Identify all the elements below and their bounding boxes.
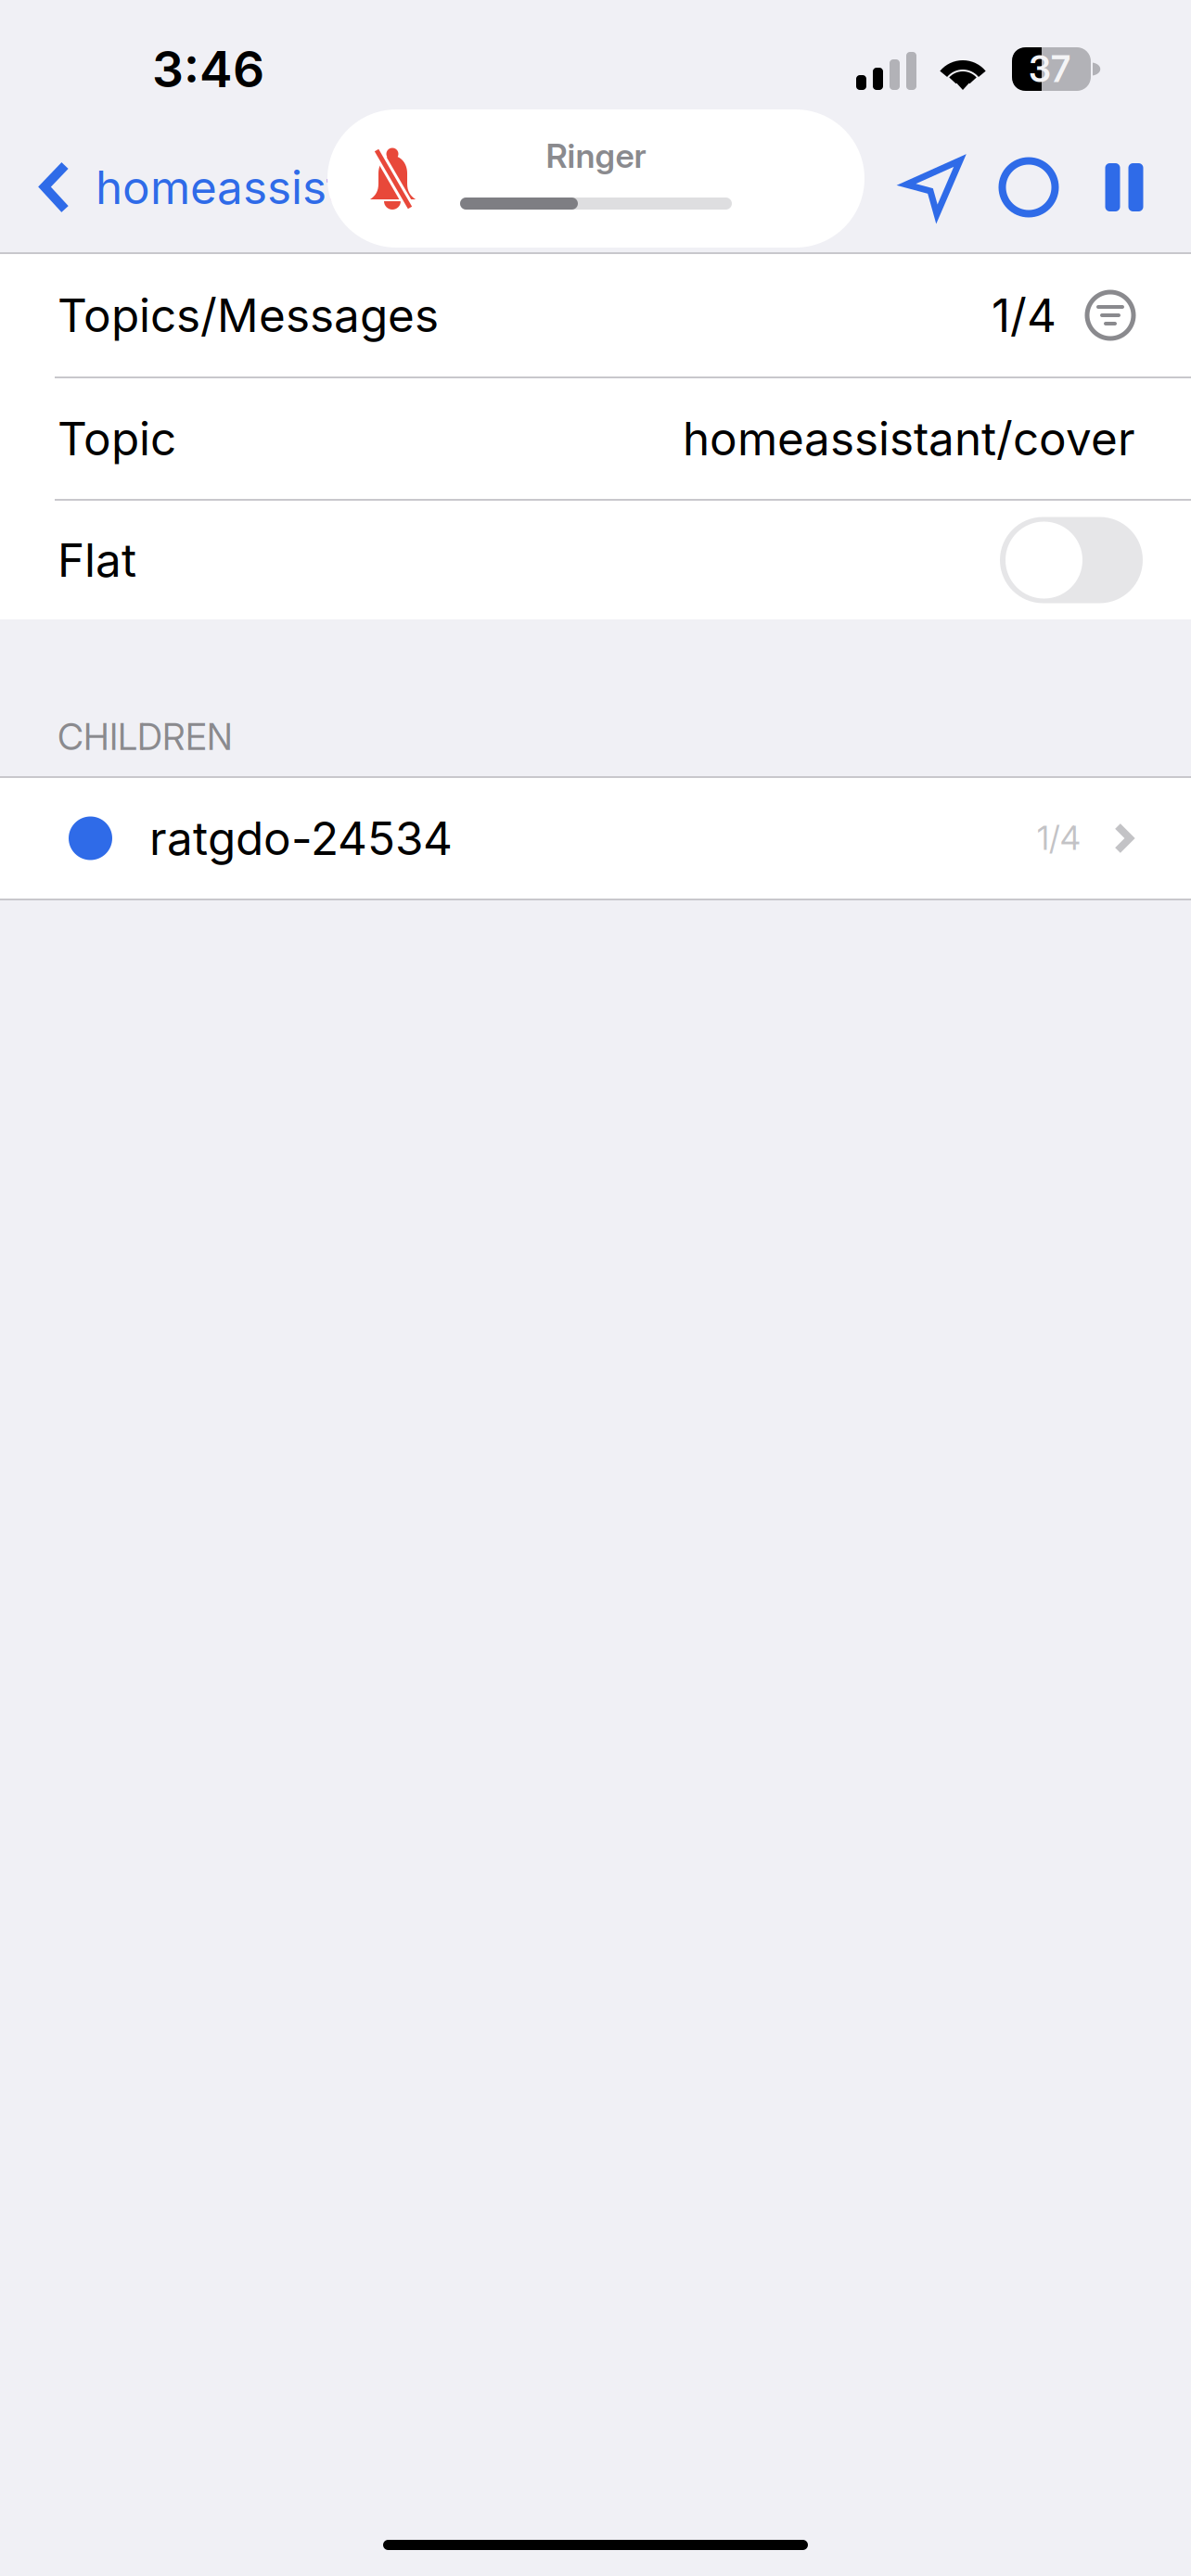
staticText: Ringer [546,135,646,176]
staticText: homeassistant/cover [683,411,1135,466]
button[interactable]: Record [996,146,1061,229]
button[interactable]: Topics/Messages [0,254,1191,376]
staticText: homeassistant [96,160,409,215]
staticText: 1/4 [1037,819,1081,858]
button[interactable]: ratgdo-24534 [0,778,1191,899]
button[interactable]: homeassistant [0,122,409,252]
staticText: 1/4 [992,288,1057,343]
button[interactable]: Publish [896,146,970,229]
staticText: Flat [58,532,136,588]
staticText: ratgdo-24534 [149,811,453,866]
staticText: 37 [1029,47,1070,91]
staticText: Topic [58,411,176,466]
staticText: CHILDREN [58,715,233,759]
staticText: Topics/Messages [58,288,439,343]
button[interactable]: Pause [1101,146,1147,229]
staticText: 3:46 [152,39,264,99]
button[interactable]: Flat [1000,517,1143,603]
